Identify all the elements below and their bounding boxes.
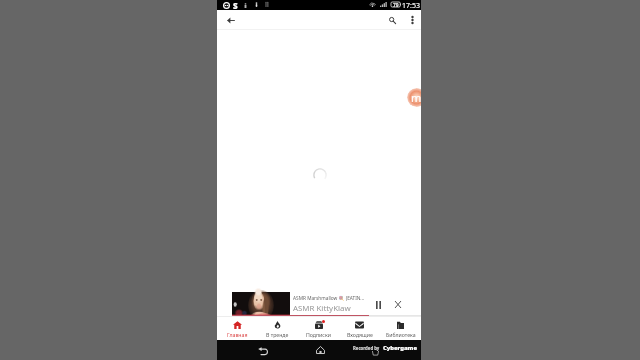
button[interactable]: Back [222, 11, 240, 29]
button[interactable]: Главная [217, 316, 257, 340]
button[interactable]: Back [257, 345, 269, 357]
staticText: Cybergame [383, 344, 417, 352]
staticText: Библиотека [386, 331, 416, 338]
button[interactable]: Floating assistant bubble [407, 88, 421, 107]
staticText: Recorded by [353, 345, 380, 351]
staticText: Входящие [347, 331, 373, 338]
staticText: 17:53 [402, 1, 420, 11]
button[interactable]: Close [390, 296, 406, 312]
staticText: S [233, 0, 238, 10]
button[interactable]: Pause [370, 297, 386, 313]
button[interactable]: Библиотека [380, 316, 421, 340]
staticText: ASMR Marshmallow 🍭 (EATIN... [293, 295, 365, 301]
button[interactable]: Подписки [298, 316, 339, 340]
button[interactable]: More options [403, 11, 421, 29]
staticText: 79 [393, 2, 399, 9]
staticText: ASMR KittyKlaw [293, 303, 351, 314]
button[interactable]: Входящие [339, 316, 380, 340]
button[interactable]: Home [314, 344, 326, 356]
staticText: m [411, 90, 421, 105]
button[interactable]: ASMR Marshmallow 🍭 (EATIN... [217, 290, 421, 316]
button[interactable]: Recent apps [370, 348, 380, 358]
staticText: Подписки [306, 331, 331, 338]
staticText: Главная [227, 331, 248, 338]
button[interactable]: Search [383, 11, 401, 29]
staticText: В тренде [266, 331, 289, 338]
button[interactable]: В тренде [257, 316, 298, 340]
